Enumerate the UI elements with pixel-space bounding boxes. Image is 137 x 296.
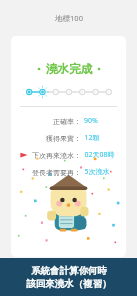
staticText: 登長者需要再： [32,168,81,177]
staticText: 02天08時 [84,150,115,160]
staticText: 90% [84,116,98,126]
staticText: 5次澆水 [84,167,110,177]
button[interactable]: 正確率： [11,115,126,127]
staticText: 正確率： [53,117,81,126]
button[interactable]: Reminder [11,149,126,161]
staticText: 下次再來澆水： [32,151,81,160]
staticText: 該回來澆水（複習） [26,278,112,290]
staticText: 系統會計算你何時 [31,265,107,277]
button[interactable]: 登長者需要再： [11,166,126,178]
button[interactable]: 獲得果實： [11,132,126,144]
staticText: 地標100 [55,13,83,23]
staticText: 獲得果實： [46,134,81,143]
staticText: 12顆 [84,133,100,143]
staticText: 澆水完成 [46,62,92,76]
button[interactable]: 系統會計算你何時 [0,258,137,296]
other: Reminder [20,151,28,159]
